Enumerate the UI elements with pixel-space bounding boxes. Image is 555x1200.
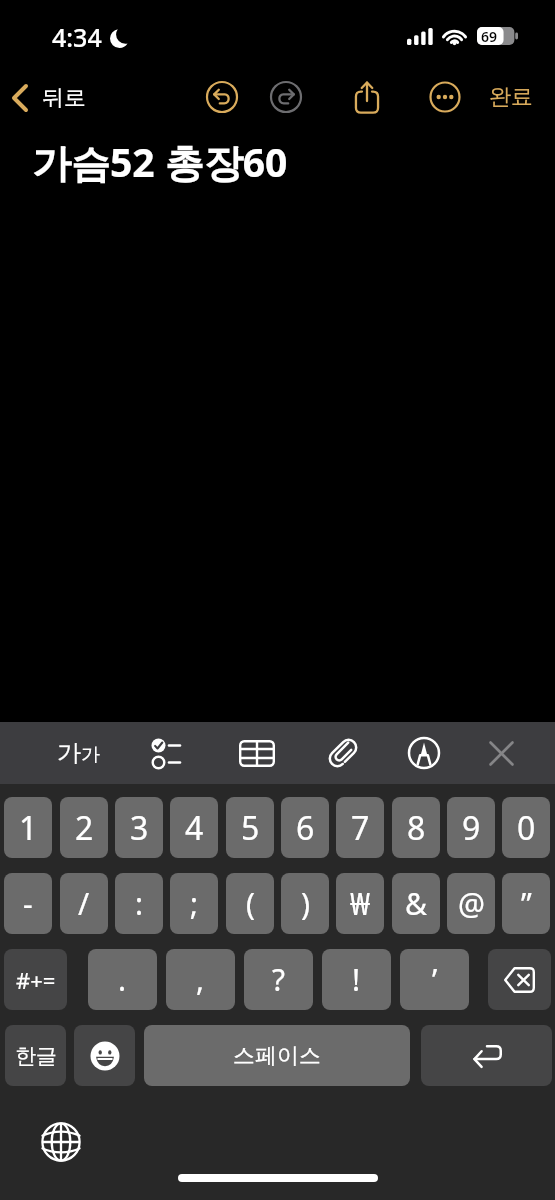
staticText: ( <box>246 883 255 924</box>
staticText: ! <box>352 959 361 1000</box>
button[interactable]: Markup <box>394 722 454 784</box>
button[interactable]: 8 <box>392 797 440 858</box>
button[interactable]: 뒤로 <box>12 76 86 120</box>
staticText: 8 <box>407 806 426 850</box>
button[interactable]: 4 <box>170 797 218 858</box>
button[interactable]: / <box>60 873 108 934</box>
button[interactable]: ; <box>170 873 218 934</box>
button[interactable]: 완료 <box>489 76 533 118</box>
staticText: 5 <box>241 806 260 850</box>
button[interactable]: ? <box>244 949 313 1010</box>
button[interactable]: Undo <box>200 75 244 119</box>
button[interactable]: Checklist <box>138 722 198 784</box>
button[interactable]: Emoji <box>74 1025 135 1086</box>
staticText: ’ <box>432 959 438 1000</box>
staticText: 3 <box>130 806 149 850</box>
staticText: 6 <box>296 806 315 850</box>
button[interactable]: ’ <box>400 949 469 1010</box>
button[interactable]: & <box>392 873 440 934</box>
staticText: - <box>23 883 33 924</box>
button[interactable]: 7 <box>336 797 384 858</box>
button[interactable]: 9 <box>447 797 495 858</box>
staticText: @ <box>458 883 485 924</box>
staticText: : <box>135 883 144 924</box>
staticText: & <box>405 883 427 924</box>
button[interactable]: Close keyboard <box>471 722 531 784</box>
button[interactable]: @ <box>447 873 495 934</box>
staticText: 가슴52 총장60 <box>32 135 288 188</box>
button[interactable]: 한글 <box>5 1025 66 1086</box>
button[interactable]: Return <box>421 1025 552 1086</box>
staticText: 2 <box>75 806 94 850</box>
staticText: 1 <box>19 806 38 850</box>
button[interactable]: ( <box>226 873 274 934</box>
button[interactable]: ! <box>322 949 391 1010</box>
button[interactable]: : <box>115 873 163 934</box>
staticText: #+= <box>16 965 56 995</box>
button[interactable]: ₩ <box>336 873 384 934</box>
staticText: , <box>196 959 205 1000</box>
staticText: 가 <box>57 738 81 768</box>
staticText: 4 <box>185 806 204 850</box>
staticText: / <box>78 883 90 924</box>
button[interactable]: Backspace <box>488 949 551 1010</box>
staticText: 뒤로 <box>42 84 86 112</box>
button[interactable]: 3 <box>115 797 163 858</box>
button[interactable]: #+= <box>4 949 67 1010</box>
button[interactable]: Table <box>227 722 287 784</box>
button[interactable]: 5 <box>226 797 274 858</box>
staticText: 한글 <box>15 1043 57 1069</box>
button[interactable]: More options <box>423 75 467 119</box>
staticText: 7 <box>351 806 370 850</box>
button[interactable]: 6 <box>281 797 329 858</box>
button[interactable]: 가 <box>49 722 107 784</box>
staticText: 0 <box>517 806 536 850</box>
button[interactable]: . <box>88 949 157 1010</box>
staticText: ; <box>190 883 199 924</box>
button[interactable]: , <box>166 949 235 1010</box>
staticText: ” <box>521 883 532 924</box>
staticText: 스페이스 <box>233 1042 321 1070</box>
button[interactable]: 2 <box>60 797 108 858</box>
staticText: 가 <box>81 743 100 767</box>
button[interactable]: Switch keyboard <box>40 1121 82 1163</box>
button[interactable]: 스페이스 <box>144 1025 410 1086</box>
staticText: 69 <box>481 27 498 45</box>
button[interactable]: Share <box>345 75 389 119</box>
staticText: ? <box>272 959 286 1000</box>
button[interactable]: - <box>4 873 52 934</box>
button[interactable]: 1 <box>4 797 52 858</box>
staticText: 9 <box>462 806 481 850</box>
button[interactable]: Redo <box>264 75 308 119</box>
button[interactable]: ) <box>281 873 329 934</box>
staticText: . <box>118 959 127 1000</box>
button[interactable]: ” <box>502 873 550 934</box>
button[interactable]: 0 <box>502 797 550 858</box>
button[interactable]: Attachment <box>313 722 373 784</box>
staticText: ) <box>301 883 310 924</box>
staticText: ₩ <box>350 883 371 924</box>
staticText: 4:34 <box>52 20 102 54</box>
staticText: 완료 <box>489 83 533 111</box>
